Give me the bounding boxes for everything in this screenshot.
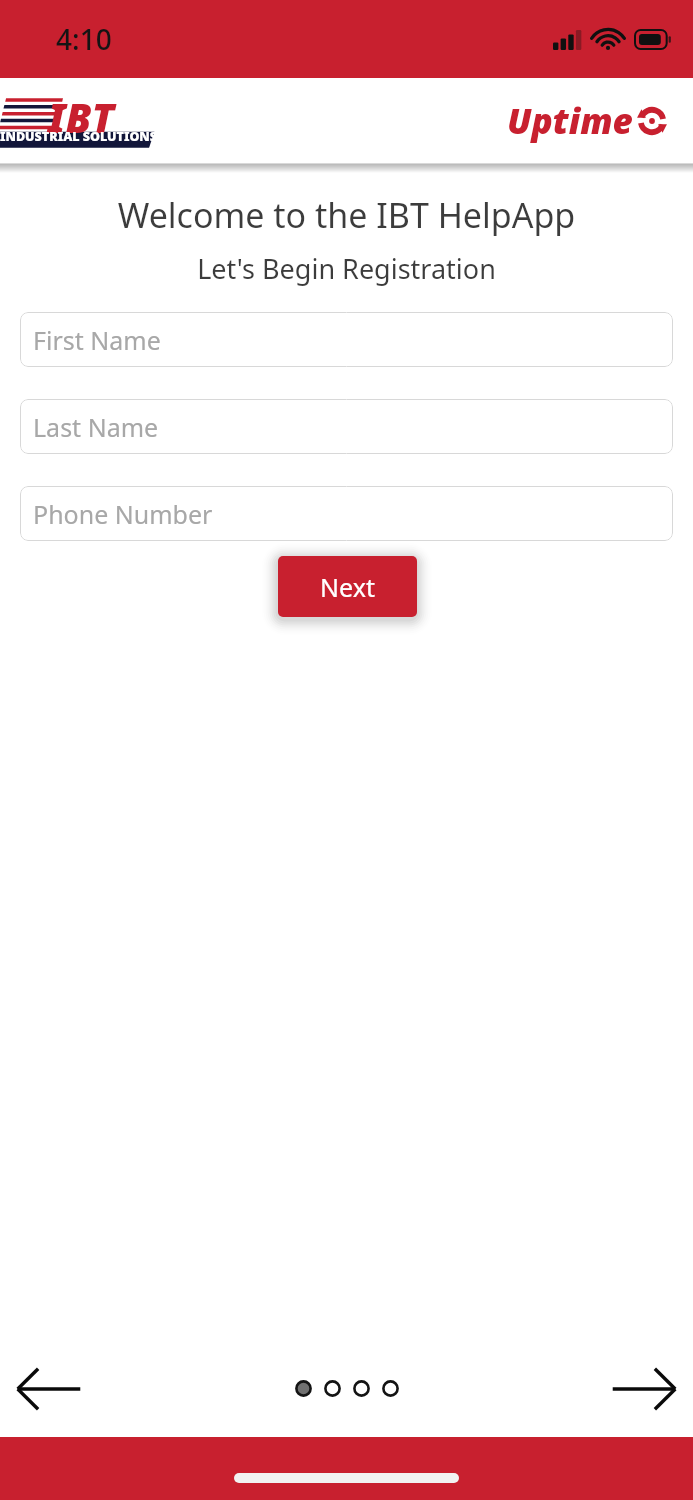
staticText: Uptime [507,97,633,143]
staticText: INDUSTRIAL SOLUTIONS [0,128,158,145]
button[interactable]: Next [278,556,417,617]
staticText: IBT [48,89,115,145]
button[interactable]: Next page [603,1358,685,1420]
staticText: Next [320,570,375,604]
button[interactable]: Phone Number [20,486,673,541]
staticText: Welcome to the IBT HelpApp [0,192,693,238]
staticText: First Name [33,323,161,357]
staticText: Let's Begin Registration [0,250,693,287]
staticText: Last Name [33,410,159,444]
staticText: Phone Number [33,497,213,531]
button[interactable]: Previous [8,1358,90,1420]
button[interactable]: First Name [20,312,673,367]
staticText: 4:10 [56,20,112,58]
button[interactable]: Last Name [20,399,673,454]
